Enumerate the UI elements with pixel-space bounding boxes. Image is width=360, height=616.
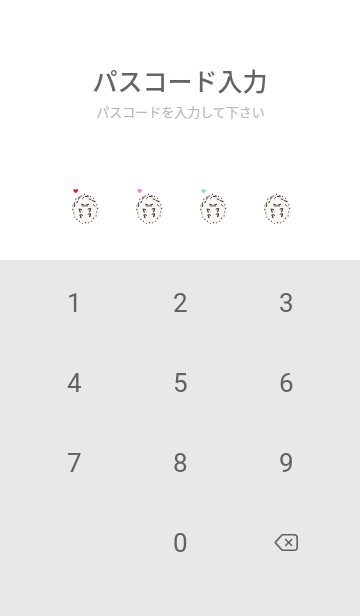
staticText: 5 bbox=[173, 368, 188, 398]
button[interactable]: 5 bbox=[127, 340, 233, 420]
staticText: 4 bbox=[67, 368, 82, 398]
staticText: パスコードを入力して下さい bbox=[96, 102, 265, 121]
button[interactable]: 3 bbox=[233, 260, 339, 340]
button[interactable]: 1 bbox=[21, 260, 127, 340]
button[interactable]: 6 bbox=[233, 340, 339, 420]
staticText: 3 bbox=[279, 288, 294, 318]
staticText: 1 bbox=[67, 288, 82, 318]
staticText: 7 bbox=[67, 448, 82, 478]
staticText: 8 bbox=[173, 448, 188, 478]
staticText: 2 bbox=[173, 288, 188, 318]
staticText: 9 bbox=[279, 448, 294, 478]
staticText: パスコード入力 bbox=[92, 62, 268, 98]
staticText: 6 bbox=[279, 368, 294, 398]
button[interactable]: 4 bbox=[21, 340, 127, 420]
button[interactable]: 9 bbox=[233, 420, 339, 500]
button[interactable]: 0 bbox=[127, 500, 233, 580]
button[interactable]: 7 bbox=[21, 420, 127, 500]
button[interactable]: 2 bbox=[127, 260, 233, 340]
button[interactable]: 8 bbox=[127, 420, 233, 500]
button[interactable]: Delete bbox=[233, 500, 339, 580]
staticText: 0 bbox=[173, 528, 188, 558]
